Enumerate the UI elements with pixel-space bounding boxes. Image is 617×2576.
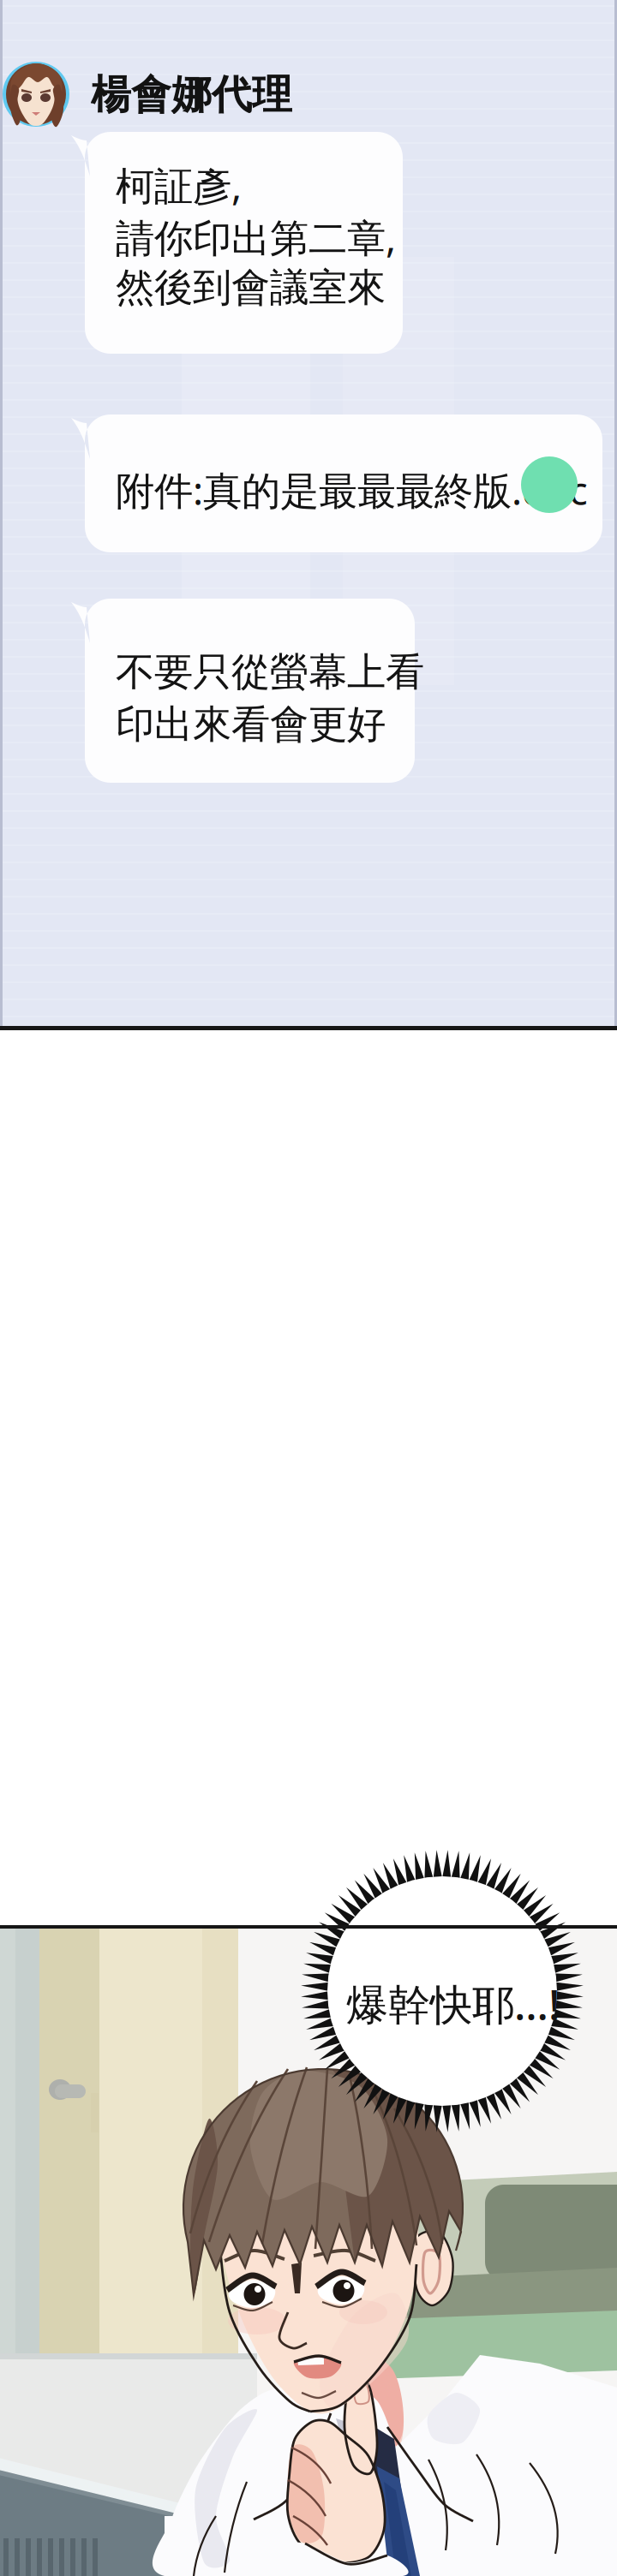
staticText: 附件:真的是最最最終版.doc [116,464,588,516]
staticText: 爆幹快耶…! [346,1976,560,2032]
staticText: 楊會娜代理 [91,70,292,119]
staticText: 柯証彥, [116,159,242,211]
staticText: 不要只從螢幕上看 [116,648,424,696]
staticText: 印出來看會更好 [116,701,386,748]
staticText: 然後到會議室來 [116,264,386,311]
staticText: 請你印出第二章, [116,212,396,263]
